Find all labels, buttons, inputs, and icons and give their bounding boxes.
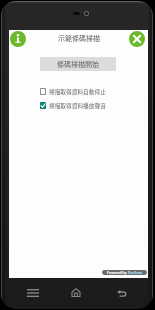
staticText: DocScan <box>128 270 143 275</box>
button[interactable]: Home <box>66 283 86 301</box>
staticText: 掃描取得資料播放聲音 <box>49 101 106 109</box>
button[interactable]: Recent apps <box>23 284 43 302</box>
button[interactable]: 條碼掃描開始 <box>40 57 116 71</box>
button[interactable]: Back <box>111 284 131 302</box>
staticText: 掃描取得資料自動停止 <box>49 87 106 95</box>
button[interactable]: 掃描取得資料自動停止 <box>38 86 118 96</box>
staticText: 條碼掃描開始 <box>57 59 99 69</box>
button[interactable]: Close <box>129 31 145 47</box>
staticText: 示範條碼掃描 <box>58 33 100 43</box>
staticText: Powered by <box>107 270 128 275</box>
button[interactable]: Information <box>10 31 26 47</box>
button[interactable]: 掃描取得資料播放聲音 <box>38 100 118 110</box>
